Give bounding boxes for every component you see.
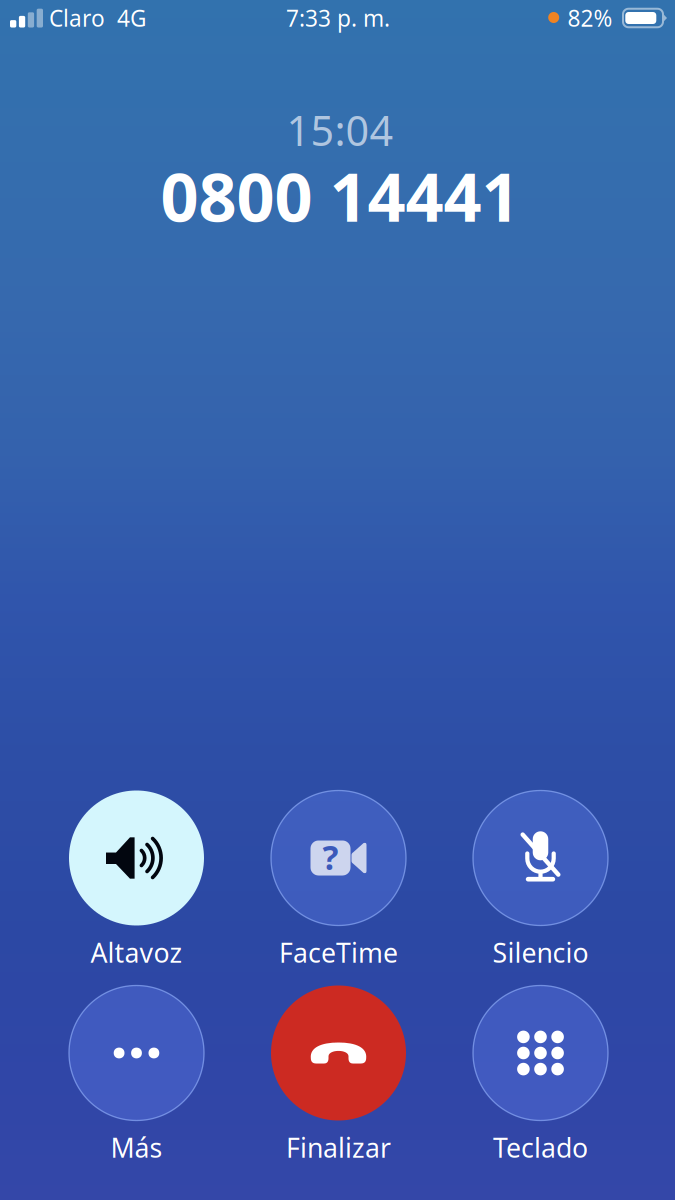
staticText: ?	[322, 835, 338, 879]
button[interactable]: Teclado	[449, 985, 631, 1159]
staticText: Claro 4G	[49, 3, 147, 33]
staticText: Más	[110, 1130, 162, 1165]
button[interactable]: Finalizar	[247, 985, 429, 1159]
button[interactable]: FaceTime	[247, 790, 429, 964]
staticText: Finalizar	[286, 1130, 391, 1165]
button[interactable]: Silencio	[449, 790, 631, 964]
staticText: Altavoz	[90, 935, 182, 970]
staticText: 0800 14441	[160, 152, 519, 240]
button[interactable]: Altavoz	[45, 790, 227, 964]
staticText: 7:33 p. m.	[286, 3, 390, 33]
button[interactable]: Más	[45, 985, 227, 1159]
staticText: 82%	[567, 3, 612, 33]
staticText: FaceTime	[279, 935, 398, 970]
staticText: Silencio	[492, 935, 588, 970]
staticText: 15:04	[286, 103, 393, 157]
staticText: Teclado	[493, 1130, 588, 1165]
